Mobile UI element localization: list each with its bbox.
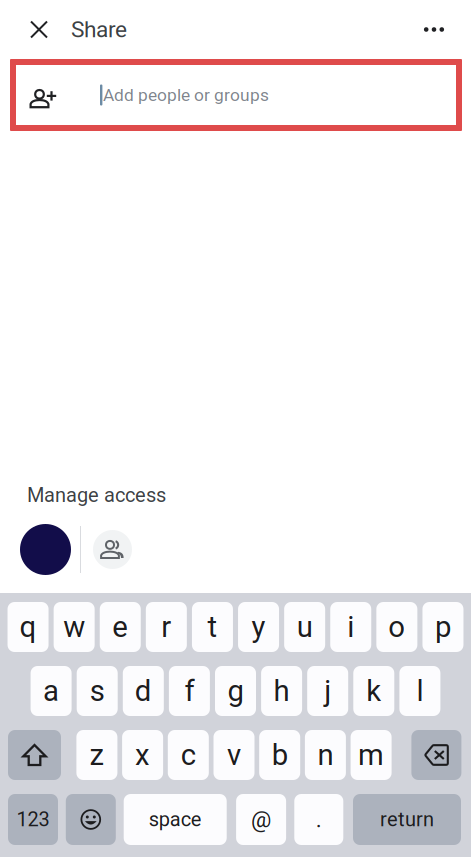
button[interactable]: o [376, 602, 417, 652]
button[interactable]: e [100, 602, 141, 652]
staticText: g [227, 674, 243, 708]
button[interactable]: q [8, 602, 49, 652]
button[interactable]: h [261, 666, 302, 716]
staticText: k [366, 674, 381, 708]
button[interactable]: Share [57, 9, 135, 49]
button[interactable]: . [294, 794, 343, 845]
staticText: return [380, 808, 434, 831]
button[interactable]: r [146, 602, 187, 652]
staticText: r [161, 610, 171, 644]
button[interactable]: z [76, 730, 117, 780]
button[interactable]: n [305, 730, 346, 780]
staticText: e [112, 610, 128, 644]
staticText: a [43, 674, 59, 708]
button[interactable]: 123 [8, 794, 58, 845]
staticText: l [416, 674, 423, 708]
button[interactable]: k [353, 666, 394, 716]
button[interactable]: v [213, 730, 254, 780]
button[interactable]: a [31, 666, 72, 716]
button[interactable]: Add people or groups [10, 59, 462, 131]
button[interactable]: x [122, 730, 163, 780]
staticText: j [324, 674, 331, 708]
button[interactable]: Emoji [66, 794, 116, 845]
button[interactable]: y [238, 602, 279, 652]
staticText: t [207, 610, 217, 644]
staticText: o [388, 610, 405, 644]
staticText: . [316, 806, 322, 833]
staticText: Share [71, 16, 127, 43]
button[interactable]: Owner avatar [20, 524, 71, 575]
staticText: Manage access [27, 484, 166, 507]
button[interactable]: j [307, 666, 348, 716]
staticText: m [358, 738, 384, 772]
button[interactable]: l [399, 666, 440, 716]
button[interactable]: Shift [8, 730, 61, 780]
staticText: b [272, 738, 288, 772]
button[interactable]: Close [21, 9, 57, 49]
button[interactable]: m [351, 730, 392, 780]
button[interactable]: s [77, 666, 118, 716]
button[interactable]: t [192, 602, 233, 652]
button[interactable]: g [215, 666, 256, 716]
staticText: y [252, 610, 266, 644]
button[interactable]: p [422, 602, 463, 652]
button[interactable]: Delete [411, 730, 461, 780]
staticText: h [274, 674, 290, 708]
button[interactable]: c [168, 730, 209, 780]
staticText: n [317, 738, 333, 772]
staticText: w [63, 610, 85, 644]
button[interactable]: u [284, 602, 325, 652]
button[interactable]: f [169, 666, 210, 716]
button[interactable]: @ [236, 794, 286, 845]
staticText: p [435, 610, 451, 644]
button[interactable]: return [353, 794, 461, 845]
staticText: space [149, 808, 202, 831]
staticText: v [227, 738, 241, 772]
button[interactable]: More options [415, 9, 453, 49]
staticText: x [135, 738, 150, 772]
staticText: d [135, 674, 152, 708]
button[interactable]: i [330, 602, 371, 652]
staticText: s [90, 674, 105, 708]
staticText: Add people or groups [103, 85, 269, 105]
button[interactable]: w [54, 602, 95, 652]
staticText: z [89, 738, 104, 772]
staticText: @ [251, 806, 271, 833]
button[interactable]: space [124, 794, 227, 845]
button[interactable]: Manage people with access [93, 530, 132, 569]
staticText: f [184, 674, 194, 708]
staticText: q [20, 610, 37, 644]
staticText: c [181, 738, 196, 772]
button[interactable]: d [123, 666, 164, 716]
button[interactable]: b [259, 730, 300, 780]
staticText: 123 [16, 808, 49, 831]
staticText: u [297, 610, 313, 644]
staticText: i [347, 610, 354, 644]
